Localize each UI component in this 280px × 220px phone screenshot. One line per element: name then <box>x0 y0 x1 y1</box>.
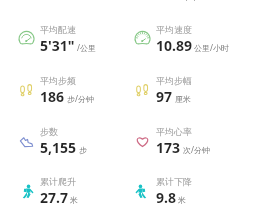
staticText: /公里 <box>77 42 96 53</box>
button[interactable]: 平均心率 <box>133 116 245 166</box>
staticText: 173 <box>156 138 181 157</box>
other: 步数 <box>18 133 35 150</box>
staticText: 步/分钟 <box>67 93 94 104</box>
staticText: 9.8 <box>156 188 176 207</box>
staticText: 公里/小时 <box>194 42 229 53</box>
other: 平均心率 <box>134 133 151 150</box>
staticText: 千卡 <box>183 0 199 2</box>
staticText: 次/分钟 <box>183 144 210 155</box>
staticText: 步数 <box>40 126 58 137</box>
other: 平均速度 <box>134 31 151 48</box>
staticText: 平均速度 <box>156 24 192 35</box>
staticText: 97 <box>156 87 173 106</box>
staticText: 累计爬升 <box>40 176 76 187</box>
staticText: 步 <box>79 145 87 155</box>
other: 平均配速 <box>18 31 35 48</box>
staticText: 10.89 <box>156 36 192 55</box>
staticText: 186 <box>40 87 65 106</box>
other: 平均步频 <box>18 82 35 99</box>
staticText: 5'31" <box>40 36 75 55</box>
staticText: 27.7 <box>40 188 68 207</box>
other: 平均步幅 <box>134 82 151 99</box>
button[interactable]: 步数 <box>17 116 129 166</box>
button[interactable]: 平均步频 <box>17 65 129 115</box>
staticText: 平均配速 <box>40 24 76 35</box>
button[interactable]: 平均配速 <box>17 14 129 64</box>
staticText: 5,155 <box>40 138 77 157</box>
button[interactable]: 累计下降 <box>133 166 245 216</box>
staticText: 厘米 <box>175 94 191 104</box>
other: 累计下降 <box>134 183 151 200</box>
staticText: 平均步频 <box>40 75 76 86</box>
staticText: 平均步幅 <box>156 75 192 86</box>
staticText: 米 <box>70 195 78 205</box>
button[interactable]: 平均步幅 <box>133 65 245 115</box>
other: 累计爬升 <box>18 183 35 200</box>
button[interactable]: 平均速度 <box>133 14 245 64</box>
staticText: 米 <box>178 195 186 205</box>
staticText: 累计下降 <box>156 176 192 187</box>
button[interactable]: 累计爬升 <box>17 166 129 216</box>
staticText: 平均心率 <box>156 126 192 137</box>
